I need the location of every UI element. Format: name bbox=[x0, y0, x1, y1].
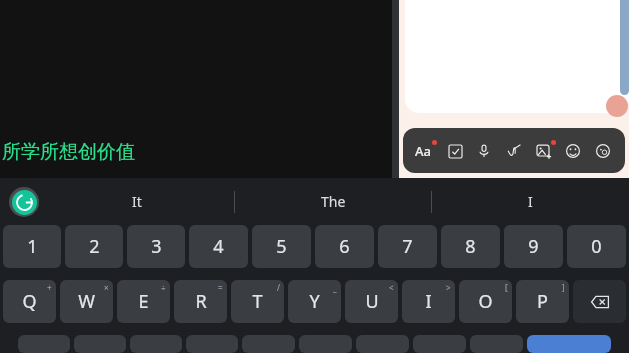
staticText: 1 bbox=[27, 234, 38, 259]
button[interactable] bbox=[74, 335, 126, 353]
button[interactable]: Q bbox=[3, 280, 56, 323]
button[interactable]: U bbox=[345, 280, 398, 323]
staticText: The bbox=[321, 192, 346, 211]
button[interactable]: E bbox=[117, 280, 170, 323]
button[interactable]: 7 bbox=[378, 225, 437, 268]
button[interactable] bbox=[356, 335, 409, 353]
button[interactable]: 5 bbox=[252, 225, 311, 268]
button[interactable]: Text style bbox=[411, 137, 439, 165]
staticText: 0 bbox=[591, 234, 602, 259]
staticText: I bbox=[528, 192, 533, 211]
button[interactable]: W bbox=[60, 280, 113, 323]
staticText: > bbox=[446, 282, 451, 293]
staticText: ÷ bbox=[161, 282, 166, 293]
button[interactable]: The bbox=[235, 178, 432, 225]
button[interactable]: Backspace bbox=[573, 280, 626, 323]
staticText: _ bbox=[333, 282, 337, 293]
button[interactable] bbox=[299, 335, 352, 353]
button[interactable] bbox=[470, 335, 523, 353]
staticText: Y bbox=[309, 289, 320, 314]
button[interactable] bbox=[242, 335, 295, 353]
staticText: It bbox=[132, 192, 142, 211]
staticText: = bbox=[218, 282, 223, 293]
button[interactable]: Checklist bbox=[441, 137, 469, 165]
button[interactable]: Emoji bbox=[559, 137, 587, 165]
button[interactable]: Grammarly bbox=[9, 187, 39, 217]
button[interactable] bbox=[18, 335, 70, 353]
staticText: ] bbox=[562, 282, 565, 293]
button[interactable]: I bbox=[402, 280, 455, 323]
button[interactable] bbox=[130, 335, 182, 353]
staticText: Aa bbox=[415, 142, 431, 160]
button[interactable]: 4 bbox=[189, 225, 248, 268]
button[interactable] bbox=[413, 335, 466, 353]
button[interactable]: Draw bbox=[500, 137, 528, 165]
staticText: 2 bbox=[89, 234, 100, 259]
button[interactable]: Color palette bbox=[589, 137, 617, 165]
button[interactable]: 9 bbox=[504, 225, 563, 268]
staticText: 9 bbox=[528, 234, 539, 259]
button[interactable]: 1 bbox=[3, 225, 61, 268]
staticText: O bbox=[478, 289, 493, 314]
staticText: / bbox=[277, 282, 280, 293]
staticText: < bbox=[389, 282, 394, 293]
button[interactable]: Enter bbox=[527, 335, 611, 353]
button[interactable]: O bbox=[459, 280, 512, 323]
staticText: U bbox=[365, 289, 379, 314]
button[interactable]: 3 bbox=[127, 225, 185, 268]
staticText: Q bbox=[22, 289, 37, 314]
staticText: 5 bbox=[276, 234, 287, 259]
staticText: T bbox=[252, 289, 263, 314]
button[interactable]: R bbox=[174, 280, 227, 323]
button[interactable] bbox=[186, 335, 238, 353]
button[interactable]: It bbox=[39, 178, 235, 225]
staticText: P bbox=[537, 289, 548, 314]
staticText: I bbox=[425, 289, 432, 314]
staticText: × bbox=[104, 282, 109, 293]
staticText: 所学所想创价值 bbox=[2, 140, 135, 164]
button[interactable]: I bbox=[432, 178, 629, 225]
button[interactable]: Voice input bbox=[470, 137, 498, 165]
button[interactable] bbox=[405, 0, 629, 113]
staticText: R bbox=[195, 289, 207, 314]
button[interactable]: 6 bbox=[315, 225, 374, 268]
staticText: W bbox=[78, 289, 95, 314]
staticText: 3 bbox=[151, 234, 162, 259]
staticText: 4 bbox=[213, 234, 224, 259]
button[interactable]: 8 bbox=[441, 225, 500, 268]
staticText: E bbox=[138, 289, 149, 314]
staticText: 8 bbox=[465, 234, 476, 259]
staticText: 6 bbox=[339, 234, 350, 259]
button[interactable]: 2 bbox=[65, 225, 123, 268]
button[interactable]: Y bbox=[288, 280, 341, 323]
button[interactable]: 0 bbox=[567, 225, 626, 268]
staticText: [ bbox=[505, 282, 508, 293]
button[interactable]: T bbox=[231, 280, 284, 323]
button[interactable]: Insert image bbox=[530, 137, 558, 165]
button[interactable]: P bbox=[516, 280, 569, 323]
staticText: + bbox=[47, 282, 52, 293]
staticText: 7 bbox=[402, 234, 413, 259]
